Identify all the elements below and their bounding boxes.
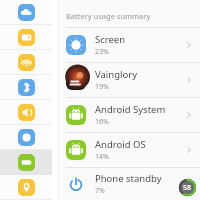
button[interactable]: Cloud xyxy=(0,0,52,25)
button[interactable]: Sounds xyxy=(0,100,52,125)
staticText: 7% xyxy=(95,186,105,196)
staticText: 19% xyxy=(95,82,109,92)
staticText: Phone standby xyxy=(95,172,162,185)
staticText: Android System xyxy=(95,103,166,116)
button[interactable]: Wi-Fi xyxy=(0,50,52,75)
button[interactable]: Accounts xyxy=(0,25,52,50)
button[interactable]: Vainglory xyxy=(57,63,200,97)
staticText: Android OS xyxy=(95,138,146,151)
button[interactable]: Android System xyxy=(57,98,200,132)
button[interactable]: Android OS xyxy=(57,133,200,167)
staticText: Vainglory xyxy=(95,68,137,81)
button[interactable]: Phone standby xyxy=(57,168,200,200)
button[interactable]: Bluetooth xyxy=(0,75,52,100)
button[interactable]: Battery xyxy=(0,150,52,175)
staticText: Battery usage summary xyxy=(66,11,151,21)
button[interactable]: Display xyxy=(0,125,52,150)
staticText: 58 xyxy=(183,183,192,193)
button[interactable]: Screen xyxy=(57,28,200,62)
staticText: 23% xyxy=(95,47,109,57)
staticText: Screen xyxy=(95,33,126,46)
staticText: 16% xyxy=(95,117,109,127)
button[interactable]: Battery level 58 percent xyxy=(178,178,197,197)
staticText: 14% xyxy=(95,152,109,162)
button[interactable]: Location xyxy=(0,175,52,200)
